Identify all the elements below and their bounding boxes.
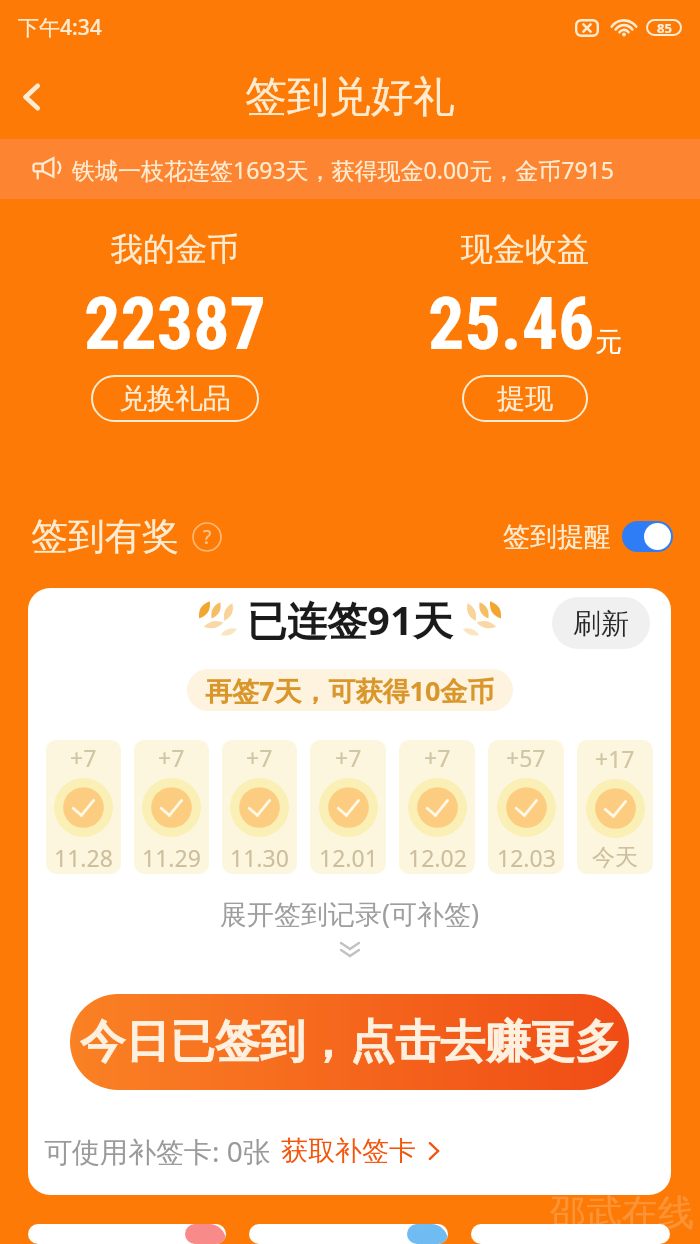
button[interactable] [471, 1224, 670, 1244]
button[interactable]: +7 [310, 740, 386, 874]
button[interactable]: 兑换礼品 [91, 375, 259, 422]
staticText: 下午4:34 [18, 13, 102, 42]
button[interactable]: 今日已签到，点击去赚更多 [70, 994, 629, 1090]
staticText: 22387 [84, 282, 266, 366]
staticText: 铁城一枝花连签1693天，获得现金0.00元，金币7915 [72, 154, 614, 185]
staticText: 11.30 [230, 842, 289, 873]
staticText: 展开签到记录(可补签) [220, 895, 480, 932]
staticText: 85 [657, 19, 672, 36]
staticText: 今天 [592, 843, 638, 872]
button[interactable]: +7 [46, 740, 121, 874]
staticText: 提现 [497, 381, 553, 416]
button[interactable]: 展开签到记录(可补签) [220, 895, 480, 959]
button[interactable]: +17 [577, 740, 653, 874]
staticText: +7 [246, 742, 273, 773]
button[interactable]: 刷新 [552, 597, 650, 649]
staticText: 12.02 [408, 842, 467, 873]
staticText: +7 [158, 742, 185, 773]
staticText: 再签7天，可获得10金币 [205, 672, 495, 709]
staticText: 12.01 [319, 842, 378, 873]
staticText: +57 [506, 742, 546, 773]
staticText: 邵武在线 [550, 1190, 694, 1235]
staticText: 兑换礼品 [119, 381, 231, 416]
staticText: 签到兑好礼 [245, 71, 455, 124]
staticText: 12.03 [497, 842, 556, 873]
staticText: +7 [424, 742, 451, 773]
staticText: 获取补签卡 [281, 1134, 416, 1168]
staticText: 刷新 [573, 606, 629, 641]
button[interactable] [249, 1224, 448, 1244]
staticText: ? [203, 524, 212, 550]
button[interactable]: Help [192, 522, 222, 552]
button[interactable]: +7 [399, 740, 475, 874]
staticText: 我的金币 [111, 229, 239, 269]
button[interactable]: 铁城一枝花连签1693天，获得现金0.00元，金币7915 [0, 139, 700, 199]
staticText: 元 [595, 325, 622, 359]
staticText: 已连签91天 [247, 592, 453, 647]
staticText: 25.46 [428, 282, 595, 366]
staticText: 11.29 [142, 842, 201, 873]
button[interactable] [28, 1224, 226, 1244]
button[interactable]: Sign-in reminder toggle [622, 521, 673, 552]
staticText: 可使用补签卡: 0张 [44, 1132, 271, 1170]
button[interactable]: 提现 [462, 375, 588, 422]
button[interactable]: +7 [222, 740, 297, 874]
staticText: 11.28 [54, 842, 113, 873]
button[interactable]: 获取补签卡 [281, 1134, 442, 1168]
staticText: +17 [595, 743, 635, 774]
staticText: 今日已签到，点击去赚更多 [80, 1014, 620, 1071]
staticText: 现金收益 [461, 229, 589, 269]
button[interactable]: +7 [134, 740, 209, 874]
staticText: 签到提醒 [503, 520, 611, 554]
staticText: 签到有奖 [31, 513, 179, 560]
staticText: +7 [70, 742, 97, 773]
staticText: +7 [335, 742, 362, 773]
button[interactable]: Back [4, 69, 60, 125]
button[interactable]: +57 [488, 740, 564, 874]
